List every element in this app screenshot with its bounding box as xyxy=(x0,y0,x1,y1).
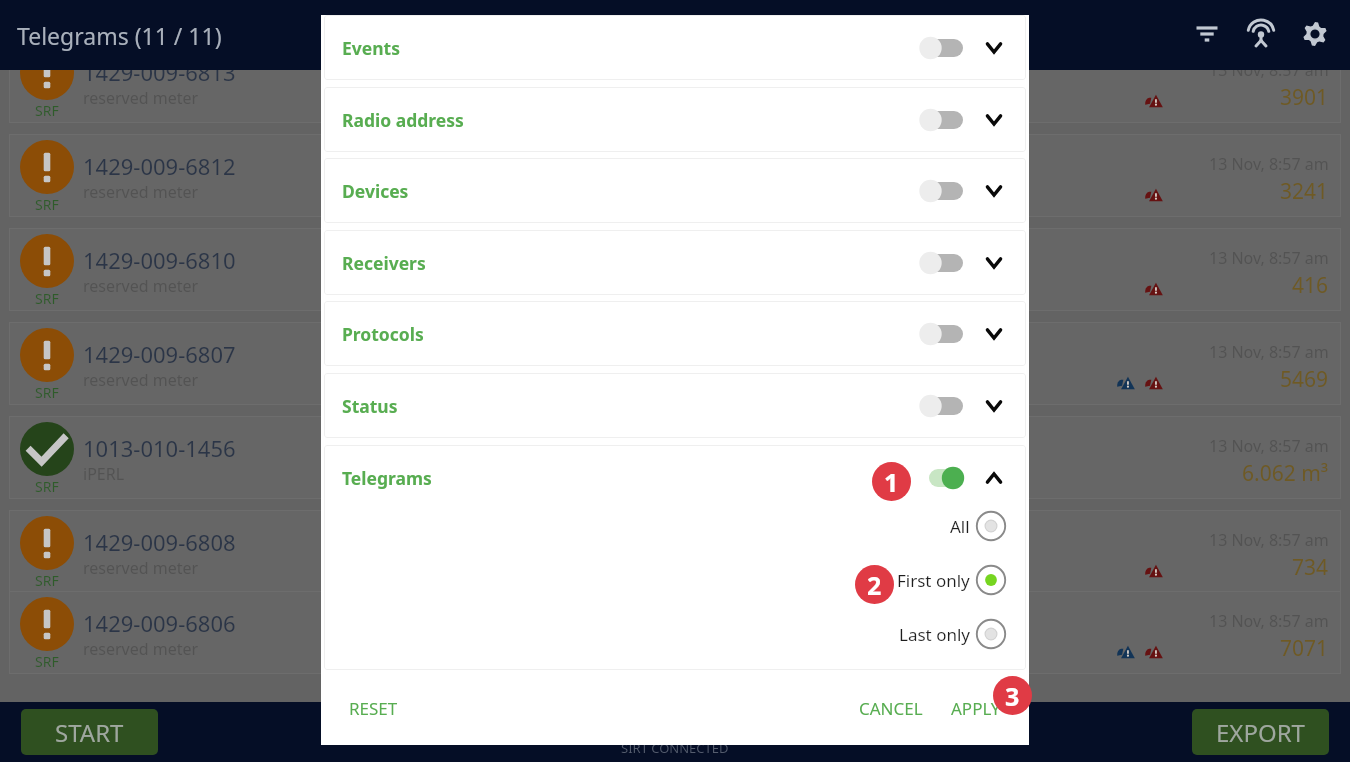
staticText: 2 xyxy=(867,568,882,602)
staticText: SIRT CONNECTED xyxy=(621,739,729,757)
button[interactable]: Settings xyxy=(1291,10,1339,58)
staticText: SRF xyxy=(35,195,59,214)
staticText: SRF xyxy=(35,477,59,496)
staticText: SRF xyxy=(35,652,59,671)
button[interactable]: Last only xyxy=(324,607,1026,661)
staticText: START xyxy=(55,716,124,749)
staticText: 7071 xyxy=(1280,634,1329,663)
staticText: RESET xyxy=(349,697,398,720)
button[interactable]: All xyxy=(324,499,1026,553)
staticText: 13 Nov, 8:57 am xyxy=(1209,341,1329,363)
staticText: 1 xyxy=(884,465,899,499)
button[interactable]: Status xyxy=(324,373,1026,438)
staticText: Receivers xyxy=(342,251,426,275)
button[interactable]: Events xyxy=(324,15,1026,80)
staticText: SRF xyxy=(35,101,59,120)
staticText: reserved meter xyxy=(83,181,199,203)
staticText: 5469 xyxy=(1280,365,1329,394)
staticText: 13 Nov, 8:57 am xyxy=(1209,70,1329,81)
staticText: 6.062 m³ xyxy=(1242,459,1329,488)
button[interactable]: Devices xyxy=(324,158,1026,223)
staticText: 1429-009-6812 xyxy=(83,151,236,181)
staticText: 1429-009-6813 xyxy=(83,70,236,87)
button[interactable]: SRF xyxy=(9,134,1341,217)
button[interactable]: CANCEL xyxy=(845,685,937,732)
staticText: 1429-009-6808 xyxy=(83,527,236,557)
staticText: 416 xyxy=(1292,271,1329,300)
staticText: SRF xyxy=(35,571,59,590)
button[interactable]: SRF xyxy=(9,228,1341,311)
staticText: 1429-009-6810 xyxy=(83,245,236,275)
staticText: 1013-010-1456 xyxy=(83,433,236,463)
button[interactable]: First only xyxy=(324,553,1026,607)
button[interactable]: SRF xyxy=(9,322,1341,405)
button[interactable]: SRF xyxy=(9,591,1341,674)
button[interactable]: Radio address xyxy=(324,87,1026,152)
staticText: reserved meter xyxy=(83,87,199,109)
button[interactable]: START xyxy=(21,709,158,755)
button[interactable]: RESET xyxy=(335,685,412,732)
staticText: Devices xyxy=(342,179,409,203)
staticText: 13 Nov, 8:57 am xyxy=(1209,153,1329,175)
staticText: CANCEL xyxy=(859,697,923,720)
staticText: 3 xyxy=(1005,679,1020,713)
staticText: First only xyxy=(897,569,970,592)
staticText: 3901 xyxy=(1280,83,1329,112)
staticText: reserved meter xyxy=(83,275,199,297)
button[interactable]: APPLY xyxy=(937,685,1015,732)
button[interactable]: Protocols xyxy=(324,301,1026,366)
button[interactable]: SRF xyxy=(9,416,1341,499)
button[interactable]: Filter xyxy=(1183,10,1231,58)
staticText: Events xyxy=(342,36,400,60)
staticText: 1429-009-6806 xyxy=(83,608,236,638)
staticText: 1429-009-6807 xyxy=(83,339,236,369)
staticText: Last only xyxy=(899,623,970,646)
button[interactable]: Receivers xyxy=(324,230,1026,295)
staticText: reserved meter xyxy=(83,638,199,660)
button[interactable]: Radio xyxy=(1237,10,1285,58)
staticText: 734 xyxy=(1292,553,1329,582)
staticText: SRF xyxy=(35,383,59,402)
button[interactable]: SRF xyxy=(9,70,1341,123)
staticText: reserved meter xyxy=(83,557,199,579)
staticText: 3241 xyxy=(1280,177,1329,206)
staticText: Telegrams (11 / 11) xyxy=(17,20,222,51)
staticText: 13 Nov, 8:57 am xyxy=(1209,529,1329,551)
staticText: 13 Nov, 8:57 am xyxy=(1209,610,1329,632)
staticText: SRF xyxy=(35,289,59,308)
button[interactable]: Telegrams xyxy=(324,445,1026,510)
staticText: EXPORT xyxy=(1216,716,1305,749)
button[interactable]: EXPORT xyxy=(1192,709,1329,755)
staticText: Telegrams xyxy=(342,466,432,490)
staticText: 13 Nov, 8:57 am xyxy=(1209,247,1329,269)
staticText: All xyxy=(950,515,970,538)
staticText: reserved meter xyxy=(83,369,199,391)
staticText: Protocols xyxy=(342,322,424,346)
staticText: APPLY xyxy=(951,697,1001,720)
staticText: Radio address xyxy=(342,108,464,132)
staticText: 13 Nov, 8:57 am xyxy=(1209,435,1329,457)
button[interactable]: SRF xyxy=(9,510,1341,593)
staticText: Status xyxy=(342,394,398,418)
staticText: iPERL xyxy=(83,463,125,485)
